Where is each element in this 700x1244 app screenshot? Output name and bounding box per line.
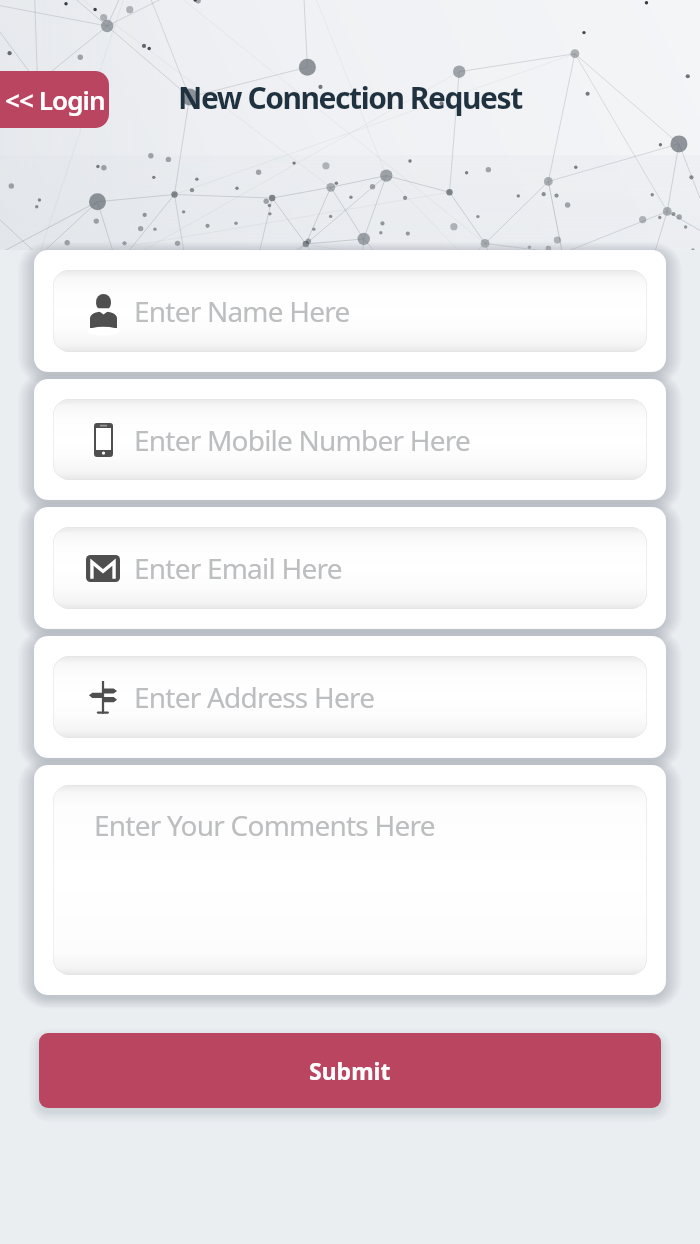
button[interactable]: Enter Your Comments Here bbox=[53, 785, 647, 975]
button[interactable]: Submit bbox=[39, 1033, 661, 1108]
staticText: New Connection Request bbox=[178, 77, 522, 118]
button[interactable]: Enter Email Here bbox=[34, 507, 666, 629]
button[interactable]: Enter Address Here bbox=[53, 656, 647, 738]
staticText: Enter Address Here bbox=[134, 678, 375, 716]
staticText: Enter Mobile Number Here bbox=[134, 421, 470, 459]
button[interactable]: << Login bbox=[0, 71, 109, 128]
staticText: Enter Your Comments Here bbox=[94, 806, 435, 844]
button[interactable]: Enter Mobile Number Here bbox=[53, 399, 647, 480]
staticText: Submit bbox=[309, 1055, 391, 1086]
button[interactable]: Enter Name Here bbox=[34, 250, 666, 372]
button[interactable]: Enter Address Here bbox=[34, 636, 666, 758]
button[interactable]: Enter Mobile Number Here bbox=[34, 379, 666, 500]
staticText: Enter Email Here bbox=[134, 549, 342, 587]
button[interactable]: Enter Your Comments Here bbox=[34, 765, 666, 995]
button[interactable]: Enter Name Here bbox=[53, 270, 647, 352]
staticText: Enter Name Here bbox=[134, 292, 350, 330]
staticText: << Login bbox=[5, 82, 105, 117]
button[interactable]: Enter Email Here bbox=[53, 527, 647, 609]
